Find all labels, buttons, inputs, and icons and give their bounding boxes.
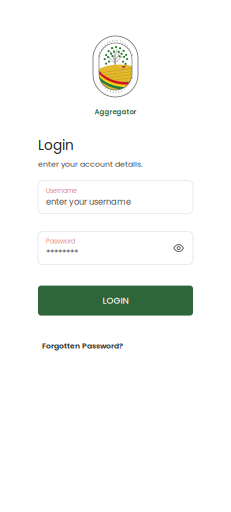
staticText: LOGIN: [102, 294, 128, 307]
button[interactable]: Forgotten Password?: [38, 341, 123, 351]
staticText: ********: [46, 247, 78, 259]
button[interactable]: LOGIN: [38, 286, 193, 316]
staticText: Forgotten Password?: [42, 341, 123, 351]
staticText: Password: [46, 237, 75, 246]
staticText: Login: [38, 136, 74, 155]
staticText: Username: [46, 186, 77, 195]
button[interactable]: Username: [38, 181, 193, 214]
staticText: Aggregator: [94, 107, 136, 117]
button[interactable]: Password: [38, 232, 193, 265]
staticText: enter your username: [46, 196, 131, 208]
staticText: enter your account details.: [38, 159, 143, 169]
